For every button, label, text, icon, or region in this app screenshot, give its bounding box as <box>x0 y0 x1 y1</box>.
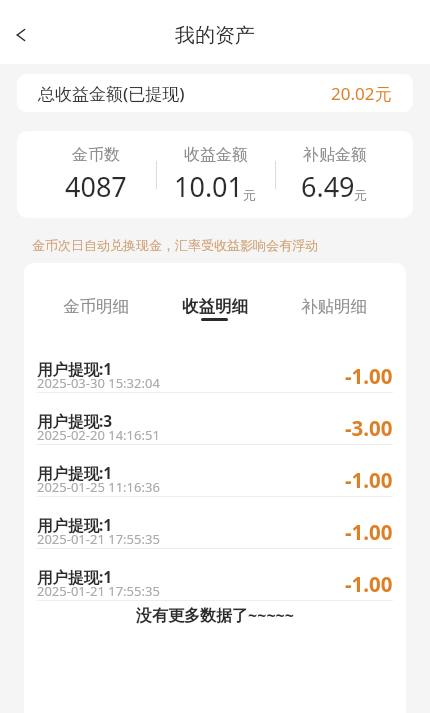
staticText: 收益明细 <box>182 296 248 317</box>
button[interactable]: 用户提现:1 <box>37 497 393 548</box>
staticText: 元 <box>354 187 367 203</box>
button[interactable]: 用户提现:1 <box>37 445 393 496</box>
staticText: 没有更多数据了~~~~~ <box>24 604 406 626</box>
staticText: 金币次日自动兑换现金，汇率受收益影响会有浮动 <box>32 237 318 253</box>
button[interactable]: 补贴明细 <box>274 263 393 341</box>
button[interactable]: 金币明细 <box>37 263 155 341</box>
button[interactable]: 用户提现:1 <box>37 341 393 392</box>
staticText: 10.01 <box>174 168 244 205</box>
staticText: 用户提现:1 <box>37 462 113 483</box>
staticText: 用户提现:1 <box>37 358 113 379</box>
staticText: 2025-02-20 14:16:51 <box>37 426 160 444</box>
staticText: -1.00 <box>345 466 393 494</box>
staticText: -1.00 <box>345 362 393 390</box>
staticText: 用户提现:1 <box>37 566 113 587</box>
button[interactable]: 总收益金额(已提现) <box>17 74 413 112</box>
button[interactable]: 用户提现:1 <box>37 549 393 600</box>
button[interactable]: Back <box>0 14 42 56</box>
staticText: 总收益金额(已提现) <box>38 82 185 105</box>
staticText: 元 <box>243 187 256 203</box>
staticText: 金币明细 <box>63 296 129 317</box>
staticText: -3.00 <box>345 414 393 442</box>
staticText: 我的资产 <box>175 23 255 48</box>
staticText: -1.00 <box>345 518 393 546</box>
staticText: 金币数 <box>72 145 120 165</box>
staticText: 用户提现:1 <box>37 514 113 535</box>
staticText: 20.02元 <box>331 82 392 105</box>
staticText: 补贴明细 <box>301 296 367 317</box>
staticText: 2025-01-21 17:55:35 <box>37 530 160 548</box>
staticText: -1.00 <box>345 570 393 598</box>
staticText: 2025-01-25 11:16:36 <box>37 478 160 496</box>
button[interactable]: 收益明细 <box>155 263 274 341</box>
staticText: 6.49 <box>301 168 355 205</box>
staticText: 4087 <box>65 168 127 205</box>
staticText: 补贴金额 <box>303 145 367 165</box>
staticText: 2025-01-21 17:55:35 <box>37 582 160 600</box>
staticText: 用户提现:3 <box>37 410 113 431</box>
button[interactable]: 用户提现:3 <box>37 393 393 444</box>
staticText: 收益金额 <box>184 145 248 165</box>
staticText: 2025-03-30 15:32:04 <box>37 374 160 392</box>
